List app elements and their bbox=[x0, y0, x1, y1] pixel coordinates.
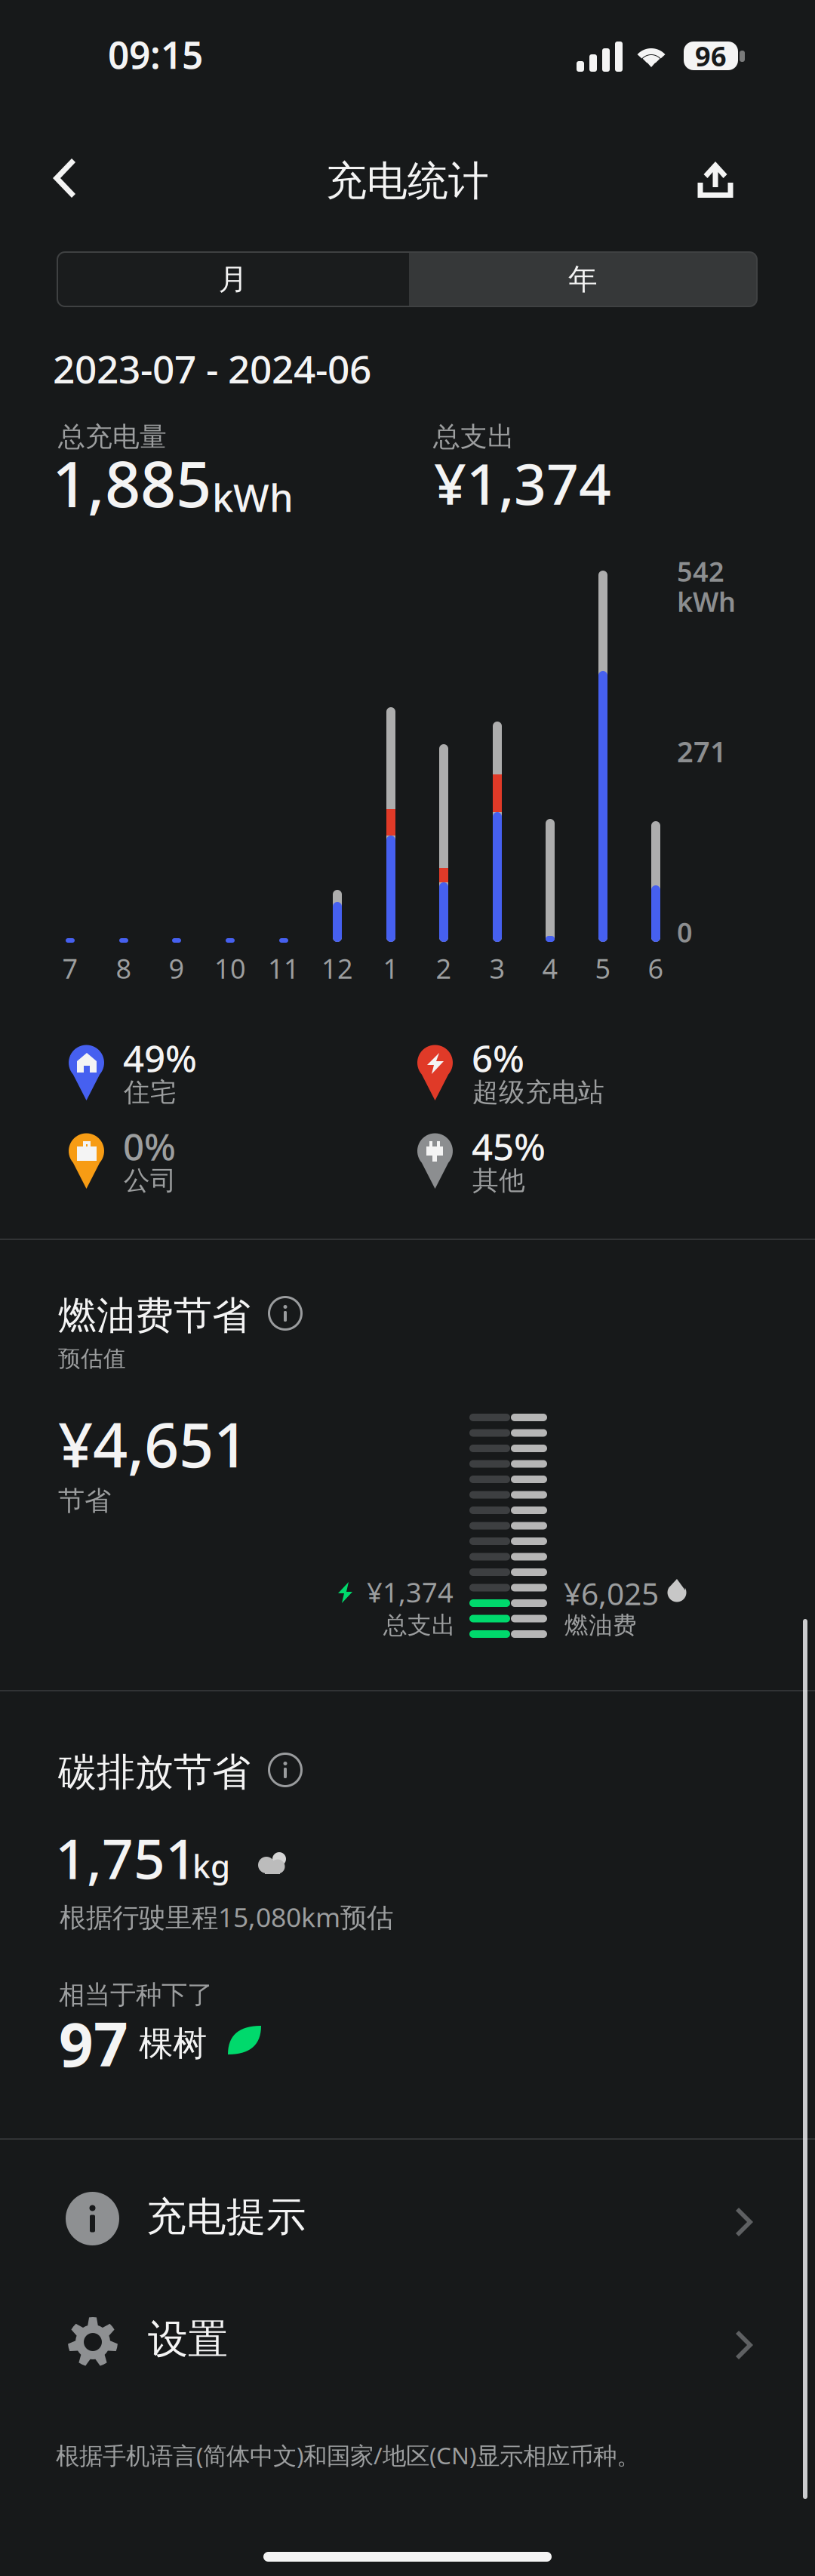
staticText: 8 bbox=[116, 950, 132, 986]
staticText: 总充电量 bbox=[58, 420, 167, 454]
staticText: ¥6,025 bbox=[564, 1573, 659, 1614]
staticText: ¥1,374 bbox=[434, 445, 611, 520]
button[interactable]: 月 bbox=[57, 252, 409, 306]
staticText: kg bbox=[192, 1845, 230, 1887]
staticText: 充电统计 bbox=[326, 156, 489, 206]
button[interactable]: Share bbox=[679, 146, 752, 214]
staticText: 1 bbox=[383, 950, 399, 986]
staticText: 燃油费 bbox=[564, 1611, 637, 1640]
staticText: 节省 bbox=[58, 1485, 111, 1517]
staticText: 4 bbox=[542, 950, 558, 986]
button[interactable]: Back bbox=[30, 144, 98, 212]
staticText: 10 bbox=[214, 950, 246, 986]
staticText: 1,751 bbox=[55, 1821, 197, 1894]
staticText: 12 bbox=[321, 950, 353, 986]
staticText: 月 bbox=[218, 261, 248, 297]
staticText: 超级充电站 bbox=[472, 1076, 604, 1108]
staticText: 相当于种下了 bbox=[59, 1979, 213, 2011]
staticText: 总支出 bbox=[433, 420, 515, 454]
staticText: 充电提示 bbox=[146, 2193, 306, 2241]
staticText: 271 bbox=[677, 732, 727, 770]
staticText: 0 bbox=[677, 914, 693, 950]
staticText: 根据行驶里程15,080km预估 bbox=[60, 1899, 393, 1935]
staticText: kWh bbox=[677, 583, 736, 620]
staticText: ¥1,374 bbox=[367, 1574, 454, 1610]
staticText: 公司 bbox=[124, 1165, 177, 1197]
staticText: 09:15 bbox=[108, 29, 203, 79]
staticText: 燃油费节省 bbox=[58, 1292, 251, 1339]
staticText: 9 bbox=[169, 950, 185, 986]
staticText: 2 bbox=[436, 950, 452, 986]
staticText: 96 bbox=[695, 38, 727, 74]
staticText: 0% bbox=[123, 1122, 176, 1171]
staticText: ¥4,651 bbox=[58, 1403, 248, 1484]
staticText: 7 bbox=[62, 950, 78, 986]
staticText: 2023-07 - 2024-06 bbox=[53, 343, 371, 394]
staticText: kWh bbox=[212, 472, 294, 523]
staticText: 碳排放节省 bbox=[58, 1749, 251, 1796]
staticText: 根据手机语言(简体中文)和国家/地区(CN)显示相应币种。 bbox=[56, 2439, 640, 2471]
staticText: 6% bbox=[472, 1033, 524, 1083]
staticText: 49% bbox=[123, 1033, 197, 1083]
button[interactable]: 充电提示 bbox=[0, 2161, 815, 2283]
staticText: 棵树 bbox=[139, 2023, 207, 2065]
staticText: 45% bbox=[472, 1122, 546, 1171]
button[interactable]: 设置 bbox=[0, 2284, 815, 2406]
button[interactable]: 年 bbox=[409, 252, 757, 306]
staticText: 设置 bbox=[148, 2315, 228, 2364]
staticText: 97 bbox=[59, 2003, 128, 2083]
staticText: 1,885 bbox=[52, 442, 211, 524]
staticText: 总支出 bbox=[383, 1611, 456, 1640]
staticText: 6 bbox=[648, 950, 664, 986]
staticText: 3 bbox=[489, 950, 505, 986]
staticText: 542 bbox=[677, 553, 724, 589]
staticText: 预估值 bbox=[58, 1345, 126, 1372]
staticText: 11 bbox=[268, 950, 300, 986]
staticText: 住宅 bbox=[124, 1076, 177, 1108]
staticText: 年 bbox=[568, 261, 598, 297]
staticText: 其他 bbox=[472, 1165, 525, 1197]
staticText: 5 bbox=[595, 950, 611, 986]
